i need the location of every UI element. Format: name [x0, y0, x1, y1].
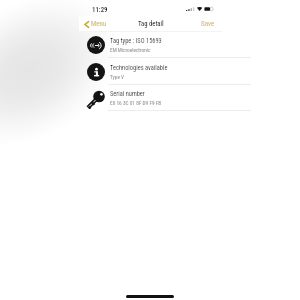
staticText: Technologies available — [110, 64, 168, 72]
staticText: Serial number — [110, 90, 145, 98]
staticText: EM Microelectronic — [110, 47, 151, 53]
staticText: Tag detail — [138, 20, 164, 28]
staticText: 11:29 — [92, 6, 108, 14]
staticText: Type V — [110, 74, 125, 80]
button[interactable]: NFC tag type — [79, 32, 222, 58]
staticText: Save — [201, 20, 215, 28]
other: Technologies available — [85, 61, 107, 83]
staticText: Tag type : ISO 15693 — [110, 37, 162, 45]
button[interactable]: Menu — [79, 18, 111, 30]
button[interactable]: Serial number — [79, 85, 222, 111]
button[interactable]: Technologies available — [79, 59, 222, 85]
staticText: Menu — [91, 20, 107, 28]
button[interactable]: Save — [195, 18, 222, 30]
other: Serial number — [85, 87, 107, 109]
other: NFC tag type — [85, 34, 107, 56]
staticText: E0 16 3C 01 8F D9 F9 FB — [110, 100, 162, 106]
